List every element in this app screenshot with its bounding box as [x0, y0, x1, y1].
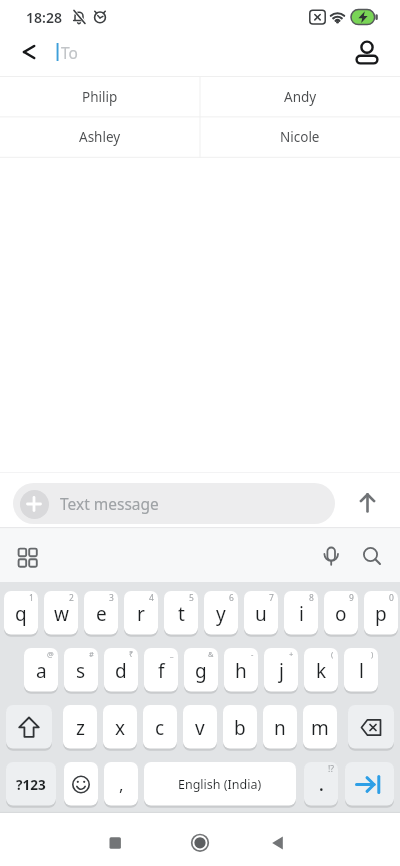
staticText: j — [279, 658, 284, 684]
button[interactable] — [348, 705, 394, 750]
staticText: w — [54, 601, 69, 627]
button[interactable] — [64, 762, 98, 807]
button[interactable]: b — [223, 705, 257, 750]
button[interactable] — [263, 828, 293, 858]
staticText: t — [178, 601, 185, 627]
staticText: & — [208, 649, 214, 659]
button[interactable]: z — [63, 705, 97, 750]
button[interactable]: c — [143, 705, 177, 750]
staticText: _ — [170, 649, 174, 659]
button[interactable]: English (India) — [144, 762, 296, 807]
button[interactable]: p — [364, 591, 398, 636]
staticText: To — [61, 42, 78, 63]
staticText: 9 — [349, 592, 354, 604]
button[interactable] — [352, 38, 382, 68]
staticText: 0 — [389, 592, 394, 604]
button[interactable]: u — [244, 591, 278, 636]
button[interactable]: , — [104, 762, 138, 807]
button[interactable]: q — [4, 591, 38, 636]
button[interactable]: w — [44, 591, 78, 636]
staticText: @ — [47, 649, 54, 659]
staticText: 3 — [109, 592, 114, 604]
staticText: f — [158, 658, 165, 684]
staticText: p — [375, 601, 387, 627]
button[interactable] — [100, 828, 130, 858]
button[interactable]: k — [304, 648, 338, 693]
button[interactable]: v — [183, 705, 217, 750]
button[interactable]: Philip — [0, 77, 200, 117]
button[interactable]: y — [204, 591, 238, 636]
staticText: l — [359, 658, 364, 684]
staticText: # — [89, 649, 94, 659]
staticText: 7 — [269, 592, 274, 604]
staticText: d — [115, 658, 127, 684]
button[interactable] — [354, 489, 382, 517]
button[interactable]: x — [103, 705, 137, 750]
staticText: m — [311, 715, 329, 741]
staticText: z — [76, 715, 85, 741]
staticText: 8 — [309, 592, 314, 604]
button[interactable]: s — [64, 648, 98, 693]
staticText: k — [316, 658, 327, 684]
button[interactable]: Ashley — [0, 117, 200, 157]
staticText: b — [234, 715, 246, 741]
staticText: x — [115, 715, 126, 741]
staticText: 1 — [29, 592, 34, 604]
button[interactable] — [185, 828, 215, 858]
button[interactable]: f — [144, 648, 178, 693]
staticText: ( — [331, 649, 334, 659]
button[interactable]: d — [104, 648, 138, 693]
button[interactable]: ?123 — [6, 762, 56, 807]
staticText: y — [216, 601, 226, 627]
button[interactable] — [345, 762, 394, 807]
staticText: s — [76, 658, 86, 684]
staticText: 4 — [149, 592, 154, 604]
staticText: 5 — [189, 592, 194, 604]
button[interactable]: j — [264, 648, 298, 693]
button[interactable]: Andy — [200, 77, 400, 117]
staticText: , — [119, 773, 124, 796]
button[interactable]: i — [284, 591, 318, 636]
button[interactable] — [20, 490, 49, 519]
staticText: u — [255, 601, 267, 627]
staticText: ) — [371, 649, 374, 659]
button[interactable] — [13, 483, 335, 524]
button[interactable]: a — [24, 648, 58, 693]
button[interactable] — [12, 543, 42, 573]
staticText: g — [195, 658, 207, 684]
button[interactable] — [14, 38, 42, 66]
button[interactable]: h — [224, 648, 258, 693]
staticText: - — [251, 649, 254, 659]
button[interactable]: t — [164, 591, 198, 636]
staticText: o — [335, 601, 347, 627]
button[interactable] — [356, 543, 386, 573]
staticText: a — [36, 658, 47, 684]
button[interactable]: r — [124, 591, 158, 636]
staticText: n — [274, 715, 286, 741]
button[interactable]: g — [184, 648, 218, 693]
button[interactable]: . — [304, 762, 338, 807]
button[interactable]: e — [84, 591, 118, 636]
staticText: q — [15, 601, 27, 627]
staticText: r — [137, 601, 145, 627]
staticText: 18:28 — [26, 8, 62, 27]
staticText: Ashley — [79, 128, 121, 146]
button[interactable]: m — [303, 705, 337, 750]
button[interactable]: l — [344, 648, 378, 693]
button[interactable] — [6, 705, 52, 750]
staticText: Andy — [284, 88, 317, 106]
staticText: . — [319, 773, 324, 796]
staticText: Nicole — [280, 128, 320, 146]
button[interactable]: Nicole — [200, 117, 400, 157]
staticText: ₹ — [129, 649, 134, 659]
staticText: c — [155, 715, 165, 741]
button[interactable] — [316, 543, 346, 573]
button[interactable]: n — [263, 705, 297, 750]
staticText: + — [289, 649, 294, 659]
staticText: !? — [328, 763, 334, 775]
button[interactable]: o — [324, 591, 358, 636]
staticText: English (India) — [178, 776, 262, 793]
staticText: i — [299, 601, 304, 627]
staticText: h — [235, 658, 247, 684]
staticText: Text message — [60, 493, 159, 514]
